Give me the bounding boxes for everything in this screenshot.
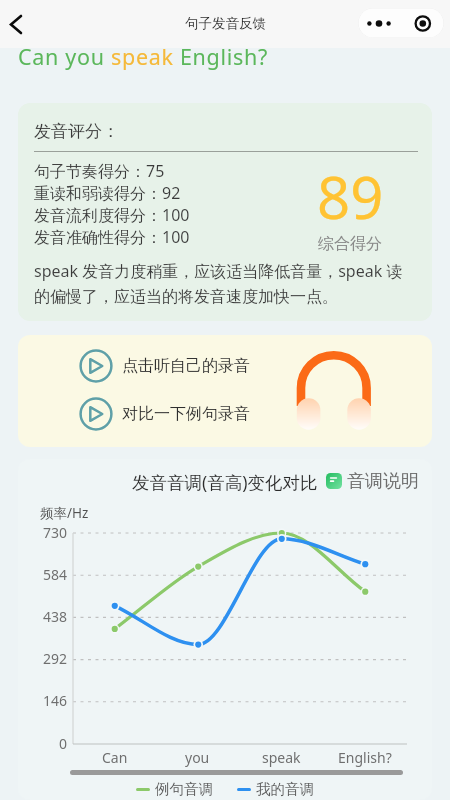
button[interactable]: Back — [0, 2, 38, 46]
staticText: 例句音调 — [155, 780, 213, 798]
button[interactable]: 对比一下例句录音 — [79, 397, 250, 431]
button[interactable]: 音调说明 — [326, 469, 419, 493]
staticText: 89 — [317, 156, 384, 236]
button[interactable]: 例句音调 — [136, 780, 213, 798]
staticText: 0 — [59, 734, 68, 752]
button[interactable]: 点击听自己的录音 — [79, 349, 250, 383]
button[interactable]: More options — [358, 8, 444, 38]
staticText: 438 — [43, 607, 68, 625]
staticText: 146 — [43, 691, 68, 709]
staticText: 我的音调 — [256, 780, 314, 798]
staticText: 对比一下例句录音 — [122, 404, 250, 424]
staticText: 频率/Hz — [40, 505, 89, 522]
staticText: 点击听自己的录音 — [122, 356, 250, 376]
staticText: 重读和弱读得分：92 — [34, 182, 181, 204]
staticText: you — [185, 748, 210, 767]
staticText: 句子发音反馈 — [185, 15, 266, 32]
staticText: 发音准确性得分：100 — [34, 226, 190, 248]
staticText: 发音流利度得分：100 — [34, 204, 190, 226]
staticText: Can — [102, 748, 128, 767]
staticText: speak — [262, 748, 301, 767]
staticText: 发音评分： — [34, 121, 119, 142]
staticText: 292 — [43, 649, 68, 667]
staticText: 发音音调(音高)变化对比 — [132, 473, 318, 493]
staticText: 句子节奏得分：75 — [34, 160, 165, 182]
staticText: Can you speak English? — [18, 45, 269, 71]
staticText: 音调说明 — [347, 469, 419, 493]
staticText: 584 — [43, 565, 68, 583]
staticText: English? — [338, 748, 392, 767]
button[interactable]: 我的音调 — [237, 780, 314, 798]
staticText: 综合得分 — [318, 234, 382, 254]
staticText: speak 发音力度稍重，应该适当降低音量，speak 读的偏慢了，应适当的将发… — [34, 257, 412, 308]
staticText: 730 — [43, 523, 68, 541]
